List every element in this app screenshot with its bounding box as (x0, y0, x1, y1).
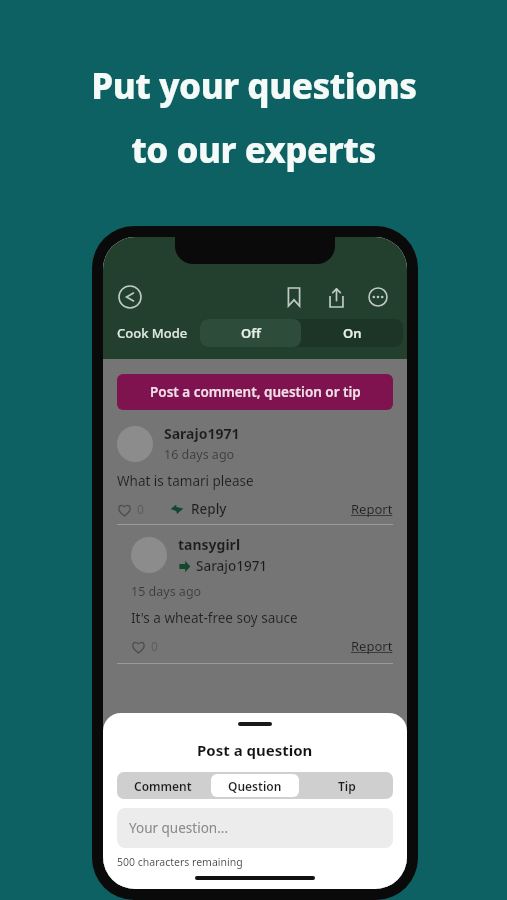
button[interactable]: Save (279, 282, 309, 312)
button[interactable]: Comment (119, 774, 207, 797)
button[interactable]: On (301, 319, 403, 347)
staticText: 500 characters remaining (117, 855, 243, 869)
button[interactable]: Your question... (117, 808, 393, 848)
staticText: 16 days ago (164, 446, 235, 463)
button[interactable]: Report (351, 500, 393, 518)
staticText: Post a comment, question or tip (150, 383, 361, 401)
staticText: to our experts (131, 126, 376, 174)
staticText: It's a wheat-free soy sauce (131, 609, 298, 627)
staticText: What is tamari please (117, 472, 254, 490)
button[interactable]: Reply (170, 500, 227, 518)
staticText: Post a question (197, 740, 313, 760)
staticText: Reply (191, 500, 227, 518)
staticText: Put your questions (91, 62, 417, 110)
button[interactable]: Off (200, 319, 301, 347)
staticText: 15 days ago (131, 583, 202, 600)
button[interactable]: Share (321, 282, 351, 312)
button[interactable]: Back (117, 284, 143, 310)
staticText: Report (351, 637, 393, 655)
button[interactable]: 0 (117, 501, 144, 517)
staticText: Your question... (129, 819, 229, 837)
button[interactable]: Question (211, 774, 299, 797)
staticText: Cook Mode (117, 324, 188, 342)
staticText: tansygirl (178, 535, 241, 554)
button[interactable]: 0 (131, 638, 158, 654)
staticText: Off (241, 324, 261, 342)
staticText: Sarajo1971 (196, 557, 268, 575)
staticText: Question (228, 778, 282, 794)
staticText: Comment (134, 778, 192, 794)
staticText: Report (351, 500, 393, 518)
staticText: Sarajo1971 (164, 424, 240, 443)
staticText: 0 (151, 638, 158, 654)
button[interactable]: More options (363, 282, 393, 312)
staticText: Tip (338, 778, 356, 794)
button[interactable]: Report (351, 637, 393, 655)
button[interactable]: Post a comment, question or tip (117, 374, 393, 410)
staticText: 0 (137, 501, 144, 517)
staticText: On (343, 324, 362, 342)
button[interactable]: Tip (303, 774, 391, 797)
